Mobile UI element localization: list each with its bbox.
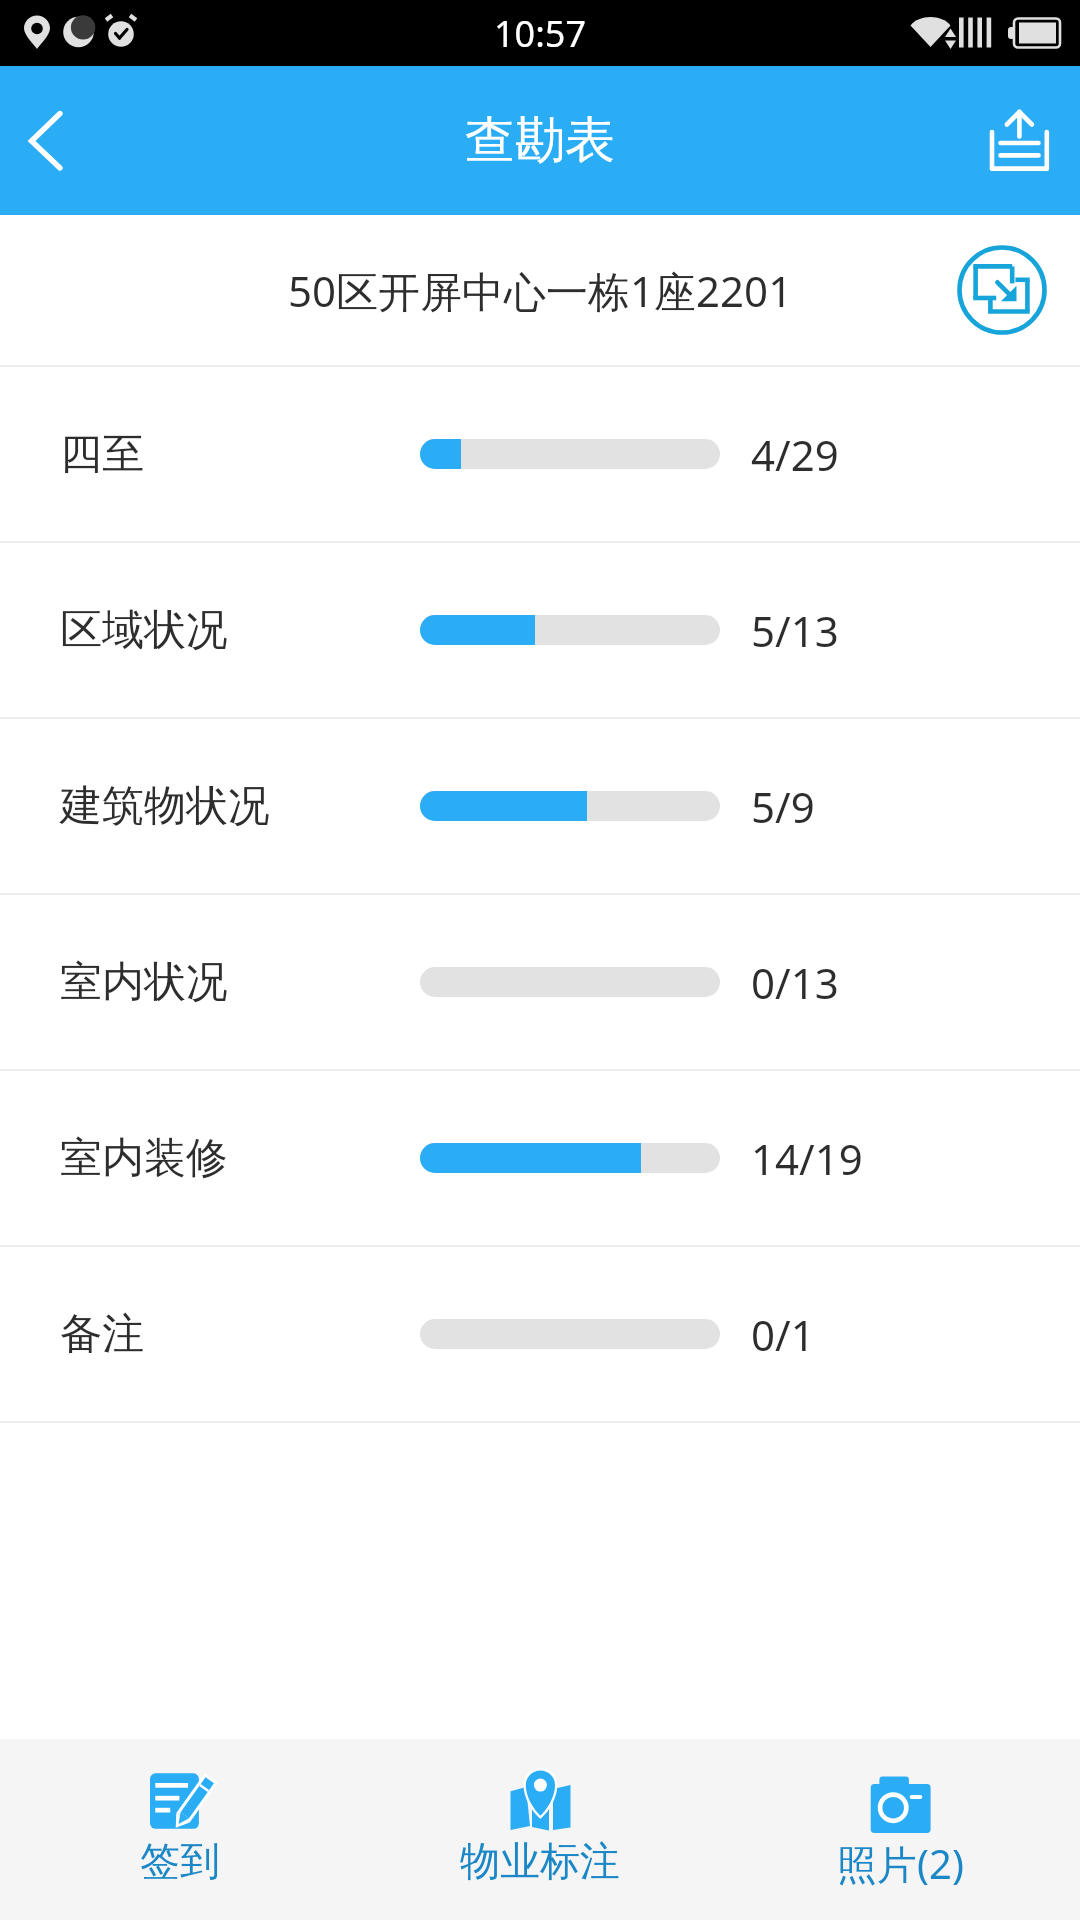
button[interactable]: 签到 (0, 1739, 360, 1920)
staticText: 14/19 (751, 1130, 863, 1187)
staticText: 照片(2) (837, 1836, 964, 1891)
staticText: 5/9 (751, 778, 815, 835)
button[interactable]: Back (0, 66, 110, 215)
button[interactable]: 区域状况 (0, 543, 1080, 717)
staticText: 备注 (60, 1308, 144, 1361)
staticText: 0/13 (751, 954, 839, 1011)
staticText: 10:57 (494, 9, 587, 58)
staticText: 5/13 (751, 602, 839, 659)
button[interactable]: 室内状况 (0, 895, 1080, 1069)
button[interactable]: Upload (950, 66, 1080, 215)
button[interactable]: 室内装修 (0, 1071, 1080, 1245)
button[interactable]: 物业标注 (360, 1739, 720, 1920)
staticText: 查勘表 (465, 109, 615, 172)
staticText: 4/29 (751, 426, 839, 483)
staticText: 室内装修 (60, 1132, 228, 1185)
staticText: 四至 (60, 428, 144, 481)
staticText: 50区开屏中心一栋1座2201 (288, 262, 793, 319)
button[interactable]: 照片(2) (720, 1739, 1080, 1920)
staticText: 室内状况 (60, 956, 228, 1009)
staticText: 区域状况 (60, 604, 228, 657)
staticText: 签到 (140, 1836, 220, 1886)
button[interactable]: 备注 (0, 1247, 1080, 1421)
button[interactable]: 建筑物状况 (0, 719, 1080, 893)
staticText: 0/1 (751, 1306, 815, 1363)
button[interactable]: Open in new (954, 242, 1050, 338)
button[interactable]: 50区开屏中心一栋1座2201 (0, 215, 1080, 365)
staticText: 建筑物状况 (60, 780, 270, 833)
staticText: 物业标注 (460, 1836, 620, 1886)
button[interactable]: 四至 (0, 367, 1080, 541)
